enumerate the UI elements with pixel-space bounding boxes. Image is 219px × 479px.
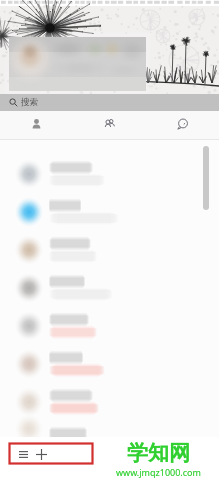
button[interactable]: Add [35, 448, 47, 460]
staticText: www.jmqz1000.com [116, 466, 201, 478]
button[interactable]: Chats [146, 111, 219, 140]
button[interactable] [0, 383, 219, 421]
button[interactable] [0, 155, 219, 193]
button[interactable]: 搜索 [0, 94, 219, 111]
staticText: 学知网 [127, 440, 190, 466]
button[interactable] [0, 231, 219, 269]
button[interactable] [0, 269, 219, 307]
button[interactable] [0, 307, 219, 345]
button[interactable]: Groups [73, 111, 146, 140]
button[interactable]: Menu [17, 448, 29, 460]
button[interactable] [0, 421, 219, 437]
button[interactable]: Contacts [0, 111, 73, 140]
button[interactable] [0, 345, 219, 383]
button[interactable] [0, 193, 219, 231]
staticText: 搜索 [21, 97, 38, 108]
